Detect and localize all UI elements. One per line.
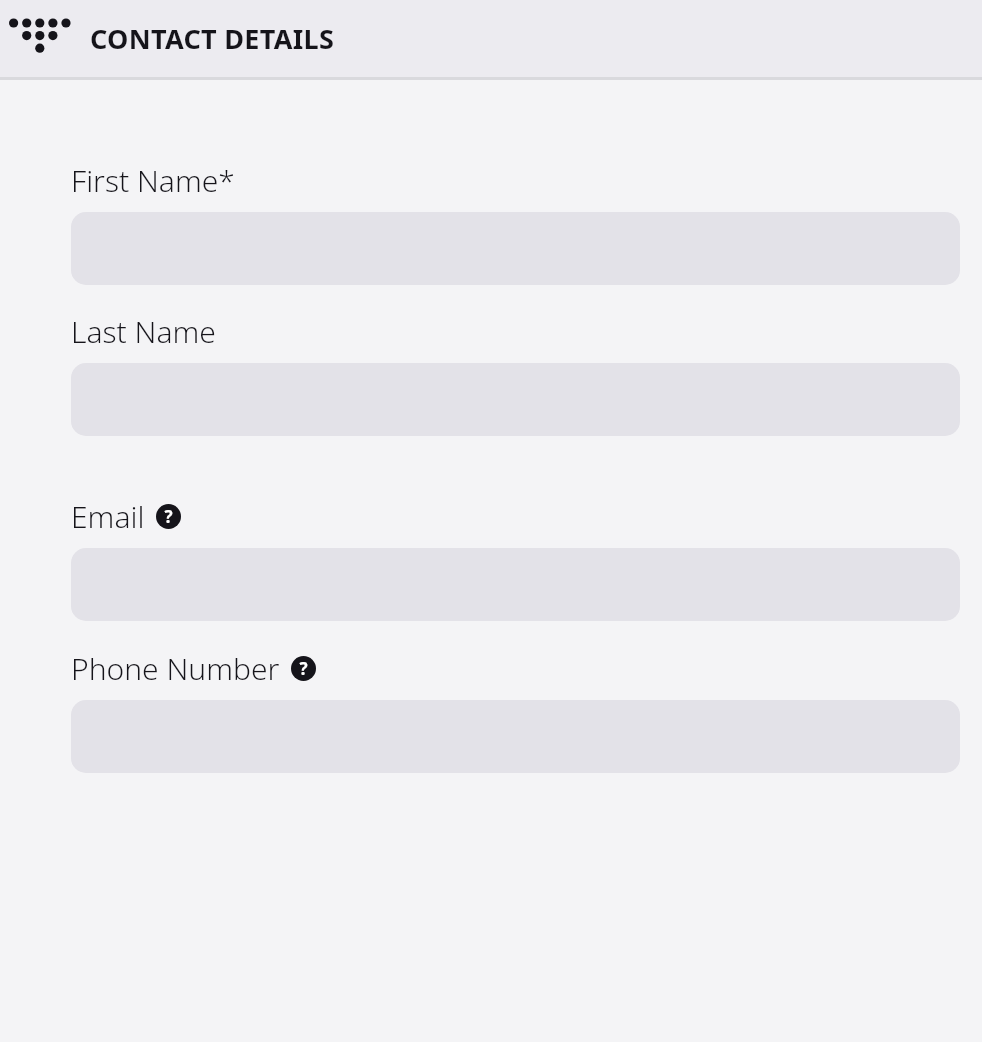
staticText: ? (164, 505, 173, 528)
button[interactable]: Help about Phone Number (291, 656, 316, 681)
staticText: ? (299, 657, 308, 680)
staticText: Email (71, 496, 145, 537)
staticText: Last Name (71, 311, 216, 352)
button[interactable]: Help about Email (156, 504, 181, 529)
staticText: Phone Number (71, 648, 280, 689)
staticText: First Name* (71, 160, 235, 201)
button[interactable]: App logo (7, 14, 65, 64)
staticText: CONTACT DETAILS (90, 20, 335, 57)
